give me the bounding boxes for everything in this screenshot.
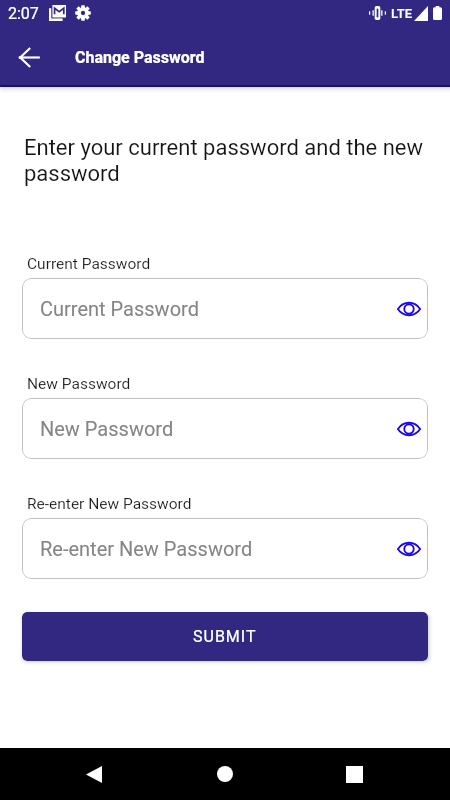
staticText: Change Password — [75, 48, 205, 67]
button[interactable]: Current Password — [22, 278, 428, 339]
button[interactable]: Show password — [390, 289, 427, 329]
button[interactable]: Re-enter New Password — [22, 518, 428, 579]
staticText: Current Password — [27, 255, 151, 273]
button[interactable]: Show password — [390, 409, 427, 449]
staticText: New Password — [27, 375, 131, 393]
button[interactable]: SUBMIT — [22, 612, 428, 661]
button[interactable]: Back — [5, 33, 53, 81]
button[interactable]: New Password — [22, 398, 428, 459]
staticText: Current Password — [40, 297, 390, 320]
staticText: SUBMIT — [193, 627, 257, 646]
button[interactable]: Home — [201, 750, 249, 798]
staticText: Re-enter New Password — [27, 495, 192, 513]
staticText: 2:07 — [8, 4, 39, 23]
staticText: New Password — [40, 417, 390, 440]
button[interactable]: Show password — [390, 529, 427, 569]
staticText: Enter your current password and the new … — [24, 135, 428, 187]
button[interactable]: Back — [70, 750, 118, 798]
button[interactable]: Recents — [330, 750, 378, 798]
staticText: Re-enter New Password — [40, 537, 390, 560]
staticText: LTE — [391, 6, 412, 21]
